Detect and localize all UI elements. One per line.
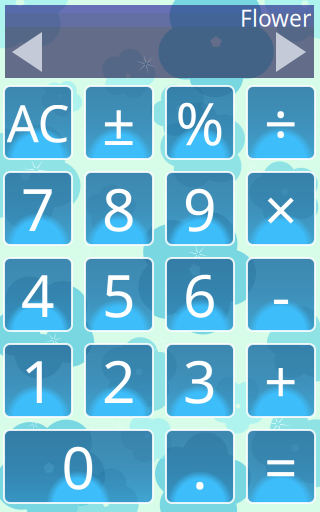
button[interactable]: . [166,430,234,503]
staticText: 0 [61,427,95,505]
staticText: 8 [102,169,136,247]
staticText: . [192,427,208,505]
staticText: ÷ [264,83,298,161]
button[interactable]: × [247,172,315,245]
button[interactable]: 5 [85,258,153,331]
staticText: 2 [102,341,136,419]
staticText: - [271,255,290,333]
button[interactable]: % [166,86,234,159]
staticText: 9 [183,169,217,247]
staticText: 7 [21,169,55,247]
staticText: 3 [183,341,217,419]
button[interactable]: 6 [166,258,234,331]
button[interactable]: 0 [4,430,153,503]
button[interactable]: = [247,430,315,503]
staticText: × [264,169,298,247]
button[interactable]: 7 [4,172,72,245]
staticText: Flower [240,3,311,33]
staticText: 5 [102,255,136,333]
button[interactable]: + [247,344,315,417]
staticText: + [264,341,298,419]
staticText: = [264,427,298,505]
button[interactable]: Next theme [276,32,306,72]
button[interactable]: - [247,258,315,331]
button[interactable]: 4 [4,258,72,331]
staticText: 4 [21,255,55,333]
button[interactable]: ± [85,86,153,159]
button[interactable]: AC [4,86,72,159]
staticText: 6 [183,255,217,333]
staticText: ± [102,83,136,161]
staticText: % [175,83,224,161]
staticText: 1 [21,341,55,419]
button[interactable]: 9 [166,172,234,245]
staticText: AC [6,89,69,156]
button[interactable]: 1 [4,344,72,417]
button[interactable]: 3 [166,344,234,417]
button[interactable]: Previous theme [12,32,42,72]
button[interactable]: ÷ [247,86,315,159]
button[interactable]: 8 [85,172,153,245]
button[interactable]: 2 [85,344,153,417]
